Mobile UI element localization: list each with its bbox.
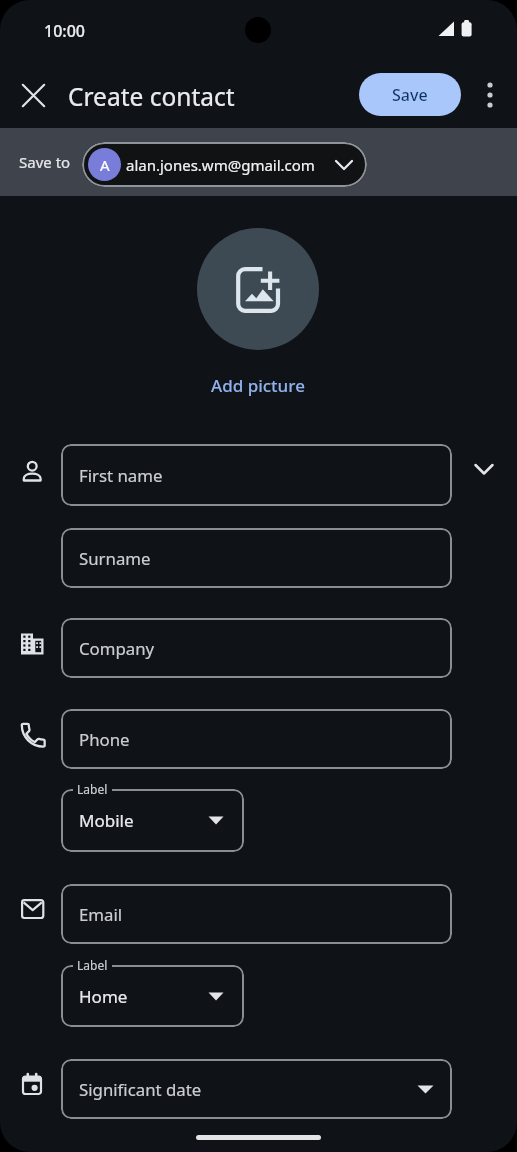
button[interactable]: Significant date xyxy=(61,1059,452,1119)
button[interactable] xyxy=(470,75,510,115)
button[interactable]: A xyxy=(82,142,367,187)
button[interactable]: Email xyxy=(61,884,452,944)
staticText: Mobile xyxy=(79,809,134,832)
staticText: Save to xyxy=(19,152,71,172)
button[interactable] xyxy=(13,75,53,115)
staticText: alan.jones.wm@gmail.com xyxy=(126,155,315,175)
button[interactable]: Company xyxy=(61,618,452,678)
staticText: Label xyxy=(77,957,108,973)
button[interactable]: Surname xyxy=(61,528,452,588)
staticText: First name xyxy=(79,464,163,487)
staticText: Home xyxy=(79,985,128,1008)
button[interactable]: Home xyxy=(61,965,244,1027)
staticText: Company xyxy=(79,637,155,660)
button[interactable] xyxy=(464,449,504,489)
staticText: Save xyxy=(392,84,428,106)
staticText: Surname xyxy=(79,547,151,570)
button[interactable]: Phone xyxy=(61,709,452,769)
button[interactable] xyxy=(197,228,319,350)
button[interactable]: Add picture xyxy=(183,370,333,400)
button[interactable]: Save xyxy=(359,73,461,116)
staticText: 10:00 xyxy=(44,20,85,42)
staticText: Create contact xyxy=(68,80,235,113)
button[interactable]: Mobile xyxy=(61,789,244,852)
staticText: Email xyxy=(79,903,123,926)
staticText: A xyxy=(100,155,110,175)
button[interactable]: First name xyxy=(61,444,452,506)
staticText: Label xyxy=(77,781,108,797)
staticText: Phone xyxy=(79,728,130,751)
staticText: Add picture xyxy=(211,374,305,397)
staticText: Significant date xyxy=(79,1078,202,1101)
